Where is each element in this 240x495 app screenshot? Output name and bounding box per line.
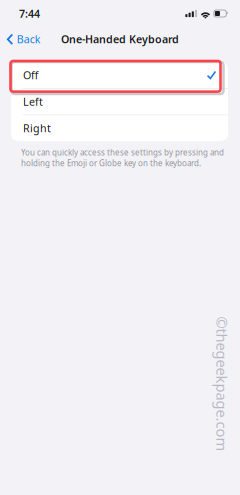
staticText: You can quickly access these settings by… bbox=[21, 147, 224, 168]
button[interactable]: Left bbox=[11, 89, 228, 115]
button[interactable]: Off bbox=[11, 62, 228, 88]
staticText: 7:44 bbox=[19, 6, 40, 21]
button[interactable]: Back bbox=[0, 27, 47, 51]
staticText: One-Handed Keyboard bbox=[61, 32, 179, 46]
staticText: Left bbox=[23, 94, 43, 109]
staticText: Off bbox=[23, 68, 38, 82]
button[interactable]: Right bbox=[11, 115, 228, 141]
staticText: ©thegeekpage.com bbox=[154, 374, 240, 394]
staticText: Back bbox=[17, 32, 41, 46]
staticText: Right bbox=[23, 121, 51, 135]
